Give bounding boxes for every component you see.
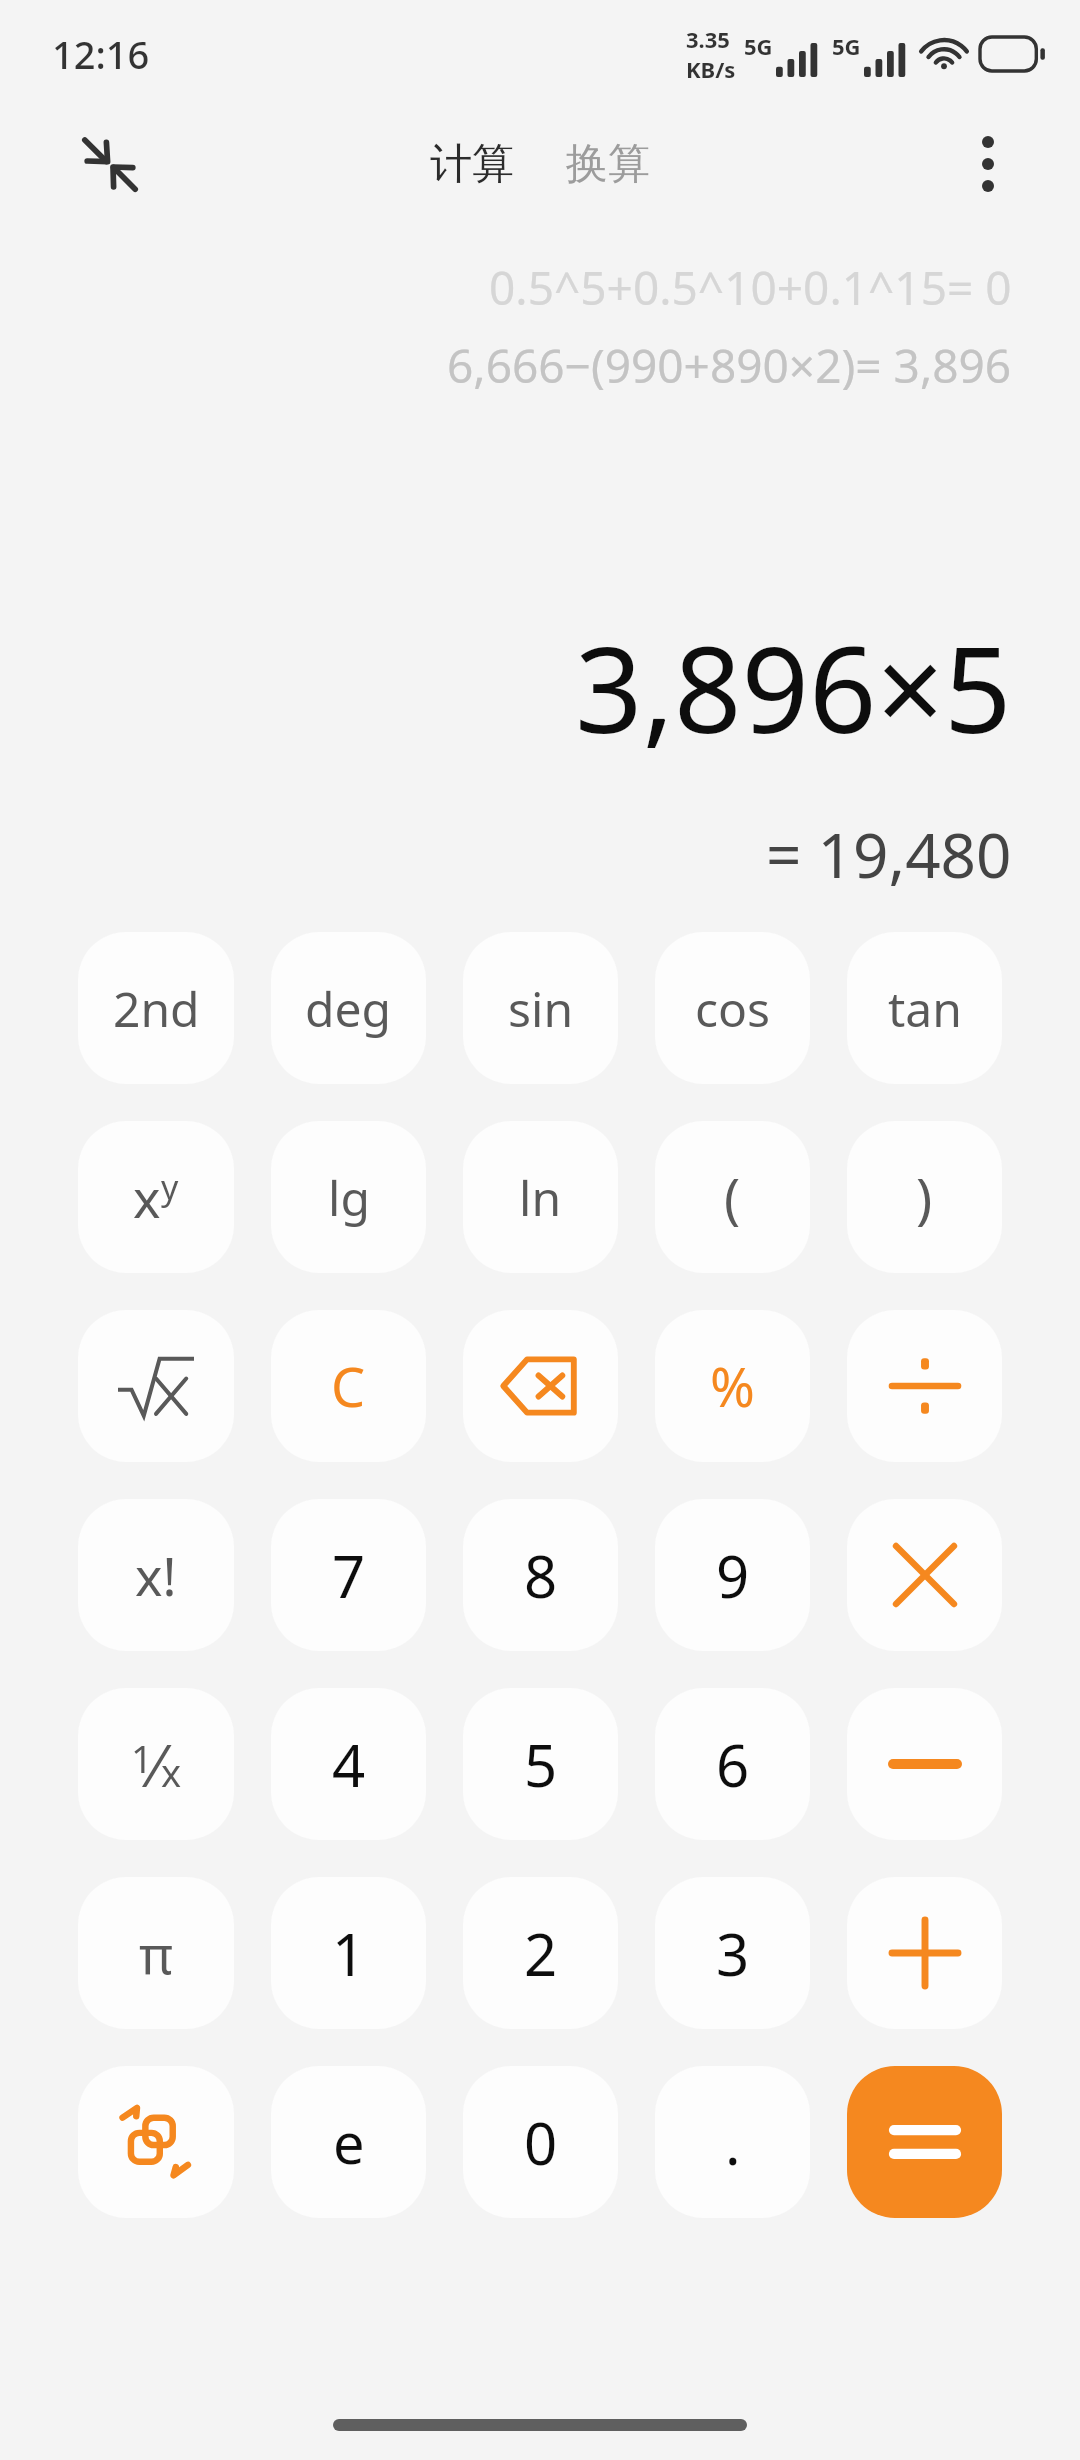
staticText: 6: [716, 1725, 750, 1804]
staticText: 2: [524, 1914, 558, 1993]
button[interactable]: More options: [944, 120, 1032, 208]
button[interactable]: ): [847, 1121, 1002, 1273]
button[interactable]: Collapse: [62, 116, 158, 212]
staticText: 2nd: [113, 976, 200, 1041]
staticText: deg: [305, 976, 392, 1041]
staticText: (: [724, 1160, 741, 1234]
button[interactable]: 4: [271, 1688, 426, 1840]
button[interactable]: 6: [655, 1688, 810, 1840]
staticText: x: [133, 1162, 161, 1233]
button[interactable]: cos: [655, 932, 810, 1084]
staticText: 3: [716, 1914, 750, 1993]
button[interactable]: 2nd: [78, 932, 234, 1084]
staticText: 计算: [430, 138, 514, 191]
staticText: 6,666−(990+890×2)= 3,896: [447, 334, 1012, 397]
button[interactable]: 3: [655, 1877, 810, 2029]
button[interactable]: 5: [463, 1688, 618, 1840]
button[interactable]: x to the power of y: [78, 1121, 234, 1273]
button[interactable]: 9: [655, 1499, 810, 1651]
button[interactable]: Convert: [78, 2066, 234, 2218]
button[interactable]: Multiply: [847, 1499, 1002, 1651]
staticText: cos: [695, 976, 771, 1041]
button[interactable]: e: [271, 2066, 426, 2218]
staticText: x: [161, 1746, 182, 1798]
staticText: e: [333, 2104, 365, 2180]
button[interactable]: tan: [847, 932, 1002, 1084]
button[interactable]: ln: [463, 1121, 618, 1273]
staticText: 0: [524, 2103, 558, 2182]
staticText: 1: [131, 1732, 153, 1784]
staticText: %: [710, 1349, 755, 1423]
button[interactable]: Factorial: [78, 1499, 234, 1651]
staticText: ln: [519, 1165, 562, 1230]
staticText: KB/s: [686, 54, 736, 84]
staticText: 5G: [832, 31, 861, 61]
staticText: 0.5^5+0.5^10+0.1^15= 0: [489, 256, 1012, 318]
button[interactable]: 1: [271, 1877, 426, 2029]
staticText: 3,896×5: [575, 607, 1012, 768]
button[interactable]: sin: [463, 932, 618, 1084]
staticText: 8: [524, 1536, 558, 1615]
button[interactable]: lg: [271, 1121, 426, 1273]
button[interactable]: Square root: [78, 1310, 234, 1462]
staticText: x!: [135, 1540, 177, 1611]
button[interactable]: One over x: [78, 1688, 234, 1840]
staticText: 5: [524, 1725, 558, 1804]
staticText: 12:16: [52, 28, 150, 80]
button[interactable]: (: [655, 1121, 810, 1273]
button[interactable]: π: [78, 1877, 234, 2029]
staticText: 5G: [744, 31, 773, 61]
button[interactable]: Equals: [847, 2066, 1002, 2218]
staticText: .: [725, 2103, 741, 2182]
button[interactable]: Minus: [847, 1688, 1002, 1840]
staticText: ⁄: [153, 1725, 161, 1804]
button[interactable]: 0: [463, 2066, 618, 2218]
button[interactable]: 换算: [552, 128, 664, 201]
button[interactable]: Plus: [847, 1877, 1002, 2029]
staticText: = 19,480: [766, 812, 1012, 896]
staticText: lg: [328, 1165, 370, 1230]
button[interactable]: Backspace: [463, 1310, 618, 1462]
staticText: 换算: [566, 138, 650, 191]
button[interactable]: .: [655, 2066, 810, 2218]
staticText: tan: [888, 976, 962, 1041]
staticText: 9: [716, 1536, 750, 1615]
staticText: 7: [332, 1536, 366, 1615]
button[interactable]: deg: [271, 932, 426, 1084]
staticText: y: [161, 1164, 179, 1210]
button[interactable]: 7: [271, 1499, 426, 1651]
staticText: 1: [332, 1914, 366, 1993]
staticText: 4: [332, 1725, 366, 1804]
button[interactable]: %: [655, 1310, 810, 1462]
button[interactable]: 8: [463, 1499, 618, 1651]
staticText: sin: [508, 976, 574, 1041]
staticText: π: [139, 1918, 173, 1989]
staticText: C: [331, 1349, 366, 1423]
staticText: 3.35: [686, 24, 730, 54]
button[interactable]: C: [271, 1310, 426, 1462]
button[interactable]: Divide: [847, 1310, 1002, 1462]
staticText: ): [916, 1160, 933, 1234]
button[interactable]: 2: [463, 1877, 618, 2029]
button[interactable]: 计算: [416, 128, 528, 201]
